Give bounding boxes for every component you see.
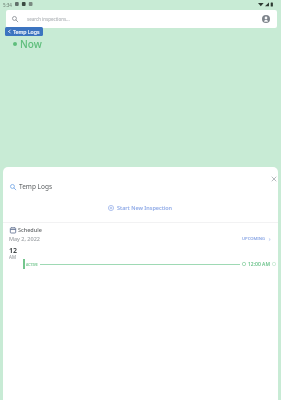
staticText: Schedule — [18, 226, 42, 233]
staticText: 12:00 AM — [248, 261, 270, 268]
button[interactable]: Temp Logs — [5, 27, 43, 36]
staticText: ACTIVE — [26, 262, 38, 267]
button[interactable]: Start New Inspection — [3, 204, 278, 211]
staticText: UPCOMING — [242, 236, 266, 242]
staticText: Temp Logs — [19, 182, 53, 191]
staticText: Temp Logs — [13, 28, 40, 35]
staticText: search inspections... — [27, 16, 70, 22]
staticText: Now — [20, 37, 42, 51]
button[interactable]: Close — [268, 173, 278, 185]
staticText: 5:34 — [3, 2, 12, 8]
button[interactable]: UPCOMING — [242, 236, 271, 242]
staticText: Start New Inspection — [117, 204, 173, 211]
staticText: 12 — [9, 246, 18, 256]
staticText: AM — [9, 254, 16, 260]
button[interactable]: search inspections... — [6, 10, 277, 28]
staticText: May 2, 2022 — [9, 235, 40, 242]
